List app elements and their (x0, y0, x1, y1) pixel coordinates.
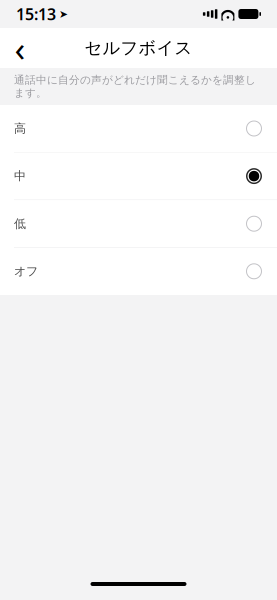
staticText: 15:13 (16, 3, 56, 25)
staticText: ‹ (14, 25, 25, 71)
staticText: 通話中に自分の声がどれだけ聞こえるかを調整します。 (14, 73, 256, 100)
staticText: セルフボイス (84, 37, 192, 59)
staticText: オフ (14, 264, 38, 279)
button[interactable]: 低 (0, 200, 277, 248)
button[interactable]: 高 (0, 105, 277, 153)
button[interactable]: 中 (0, 153, 277, 200)
staticText: 高 (14, 121, 26, 136)
button[interactable]: オフ (0, 248, 277, 295)
staticText: ➤ (59, 8, 68, 20)
button[interactable]: 戻る (0, 28, 40, 68)
staticText: 低 (14, 216, 26, 231)
staticText: 中 (14, 169, 26, 183)
